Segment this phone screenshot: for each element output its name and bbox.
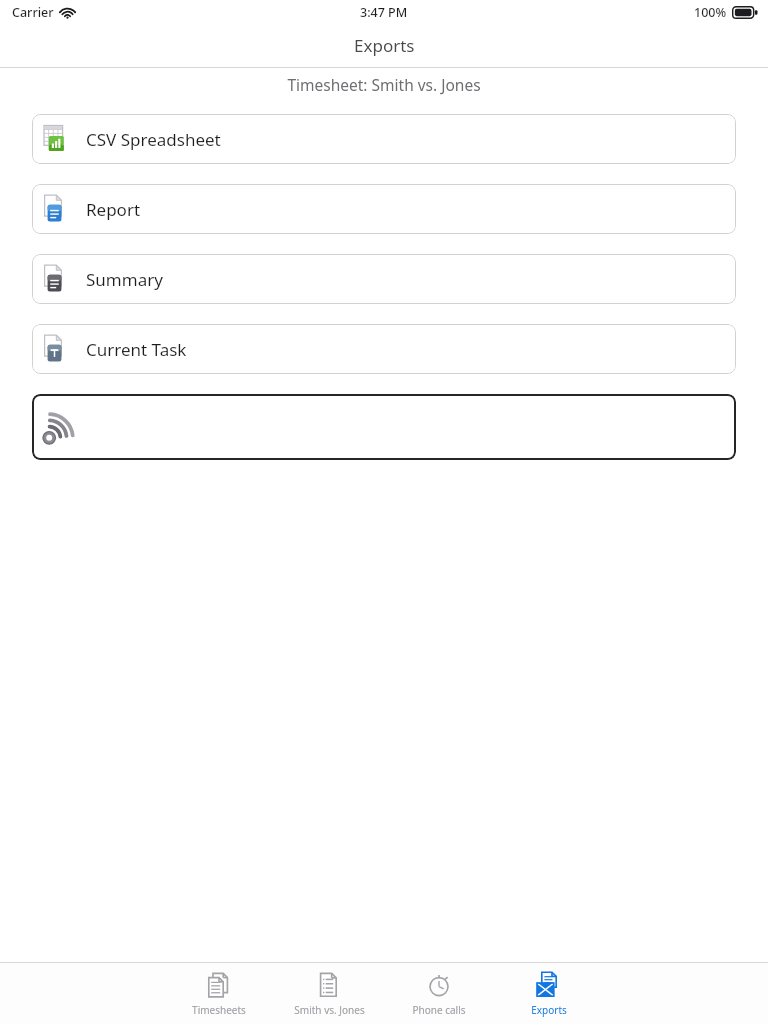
button[interactable]: Exports xyxy=(494,963,604,1024)
button[interactable]: Current Task xyxy=(32,324,736,374)
staticText: Report xyxy=(86,198,141,221)
button[interactable]: CSV Spreadsheet xyxy=(32,114,736,164)
button[interactable]: Broadcast export xyxy=(32,394,736,460)
staticText: Summary xyxy=(86,268,163,291)
button[interactable]: Summary xyxy=(32,254,736,304)
staticText: Current Task xyxy=(86,338,187,361)
staticText: Smith vs. Jones xyxy=(294,1003,365,1017)
staticText: CSV Spreadsheet xyxy=(86,128,221,151)
staticText: Phone calls xyxy=(412,1003,466,1017)
staticText: Timesheets xyxy=(192,1003,246,1017)
button[interactable]: Report xyxy=(32,184,736,234)
button[interactable]: Smith vs. Jones xyxy=(274,963,384,1024)
staticText: 3:47 PM xyxy=(360,4,408,21)
button[interactable]: Phone calls xyxy=(384,963,494,1024)
staticText: Exports xyxy=(531,1003,567,1017)
staticText: Exports xyxy=(354,34,415,57)
staticText: Timesheet: Smith vs. Jones xyxy=(0,74,768,95)
staticText: Carrier xyxy=(12,4,54,21)
staticText: 100% xyxy=(694,4,727,21)
button[interactable]: Timesheets xyxy=(164,963,274,1024)
